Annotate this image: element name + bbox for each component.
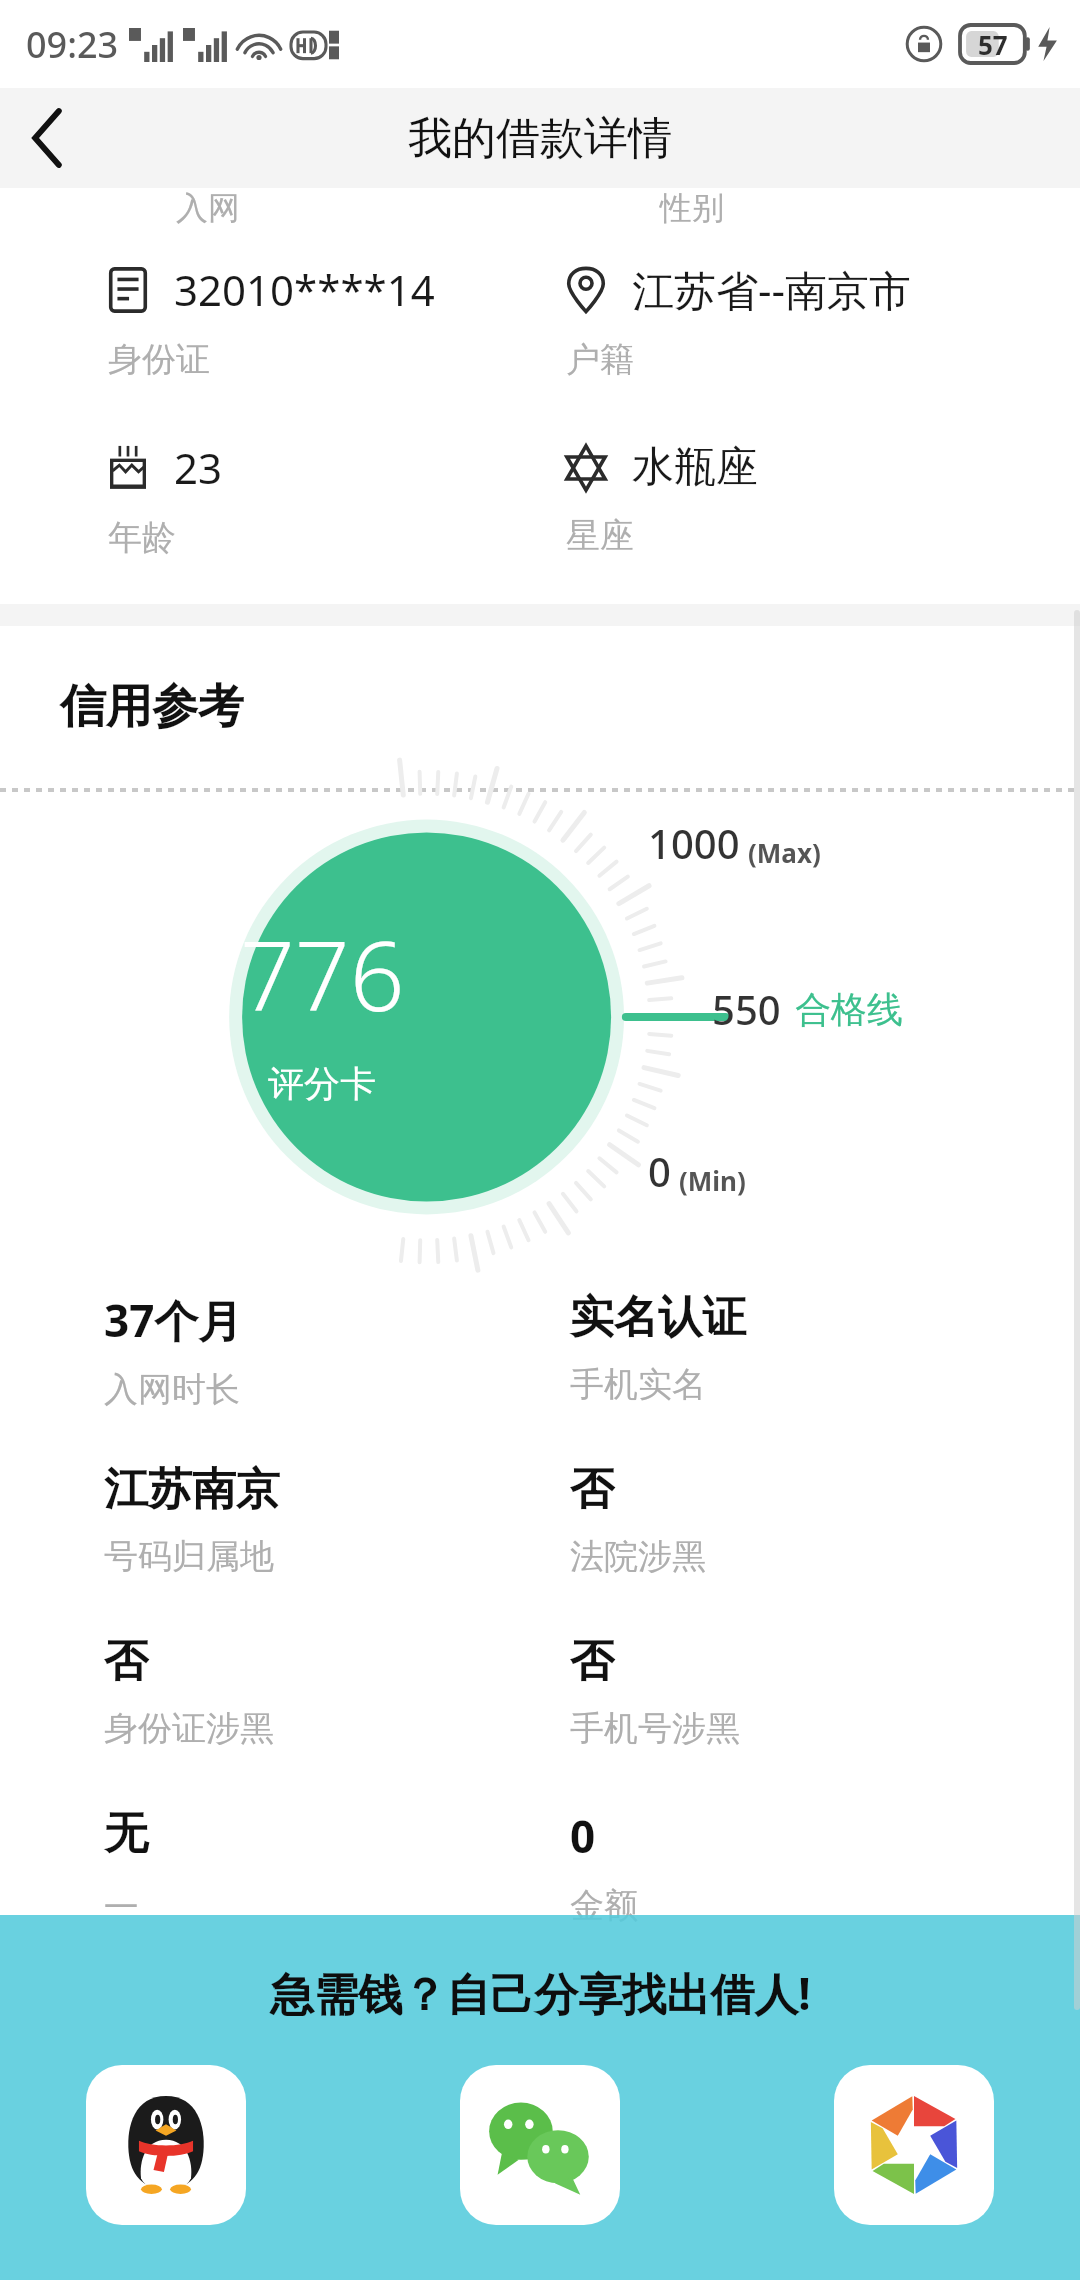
button[interactable]: Share to QZone	[834, 2065, 994, 2225]
button[interactable]: 江苏南京	[104, 1462, 540, 1634]
staticText: 手机号涉黑	[570, 1707, 740, 1750]
staticText: 急需钱？自己分享找出借人!	[270, 1963, 811, 2023]
staticText: 776	[240, 908, 405, 1039]
staticText: 57	[978, 27, 1008, 62]
staticText: (Max)	[748, 835, 821, 870]
button[interactable]: 水瓶座	[562, 410, 1080, 588]
staticText: 性别	[660, 188, 724, 228]
button[interactable]: Share to QQ	[86, 2065, 246, 2225]
staticText: 身份证	[108, 338, 210, 381]
staticText: —	[104, 1879, 138, 1925]
staticText: 无	[104, 1806, 148, 1861]
staticText: 评分卡	[268, 1061, 376, 1106]
staticText: 否	[570, 1462, 614, 1517]
staticText: 信用参考	[60, 678, 244, 736]
button[interactable]: 23	[104, 410, 540, 588]
staticText: 水瓶座	[632, 441, 758, 494]
staticText: 法院涉黑	[570, 1535, 706, 1578]
staticText: 合格线	[795, 987, 903, 1032]
staticText: 入网时长	[104, 1368, 240, 1411]
button[interactable]: 否	[104, 1634, 540, 1806]
staticText: 32010****14	[174, 261, 435, 318]
staticText: 户籍	[566, 338, 634, 381]
staticText: 金额	[570, 1884, 638, 1927]
staticText: 江苏省--南京市	[632, 261, 912, 318]
staticText: 23	[174, 439, 223, 496]
staticText: 1000	[648, 816, 740, 870]
button[interactable]: Share to WeChat	[460, 2065, 620, 2225]
staticText: 37个月	[104, 1290, 243, 1350]
staticText: 身份证涉黑	[104, 1707, 274, 1750]
button[interactable]: Back	[0, 90, 96, 186]
staticText: 09:23	[26, 20, 119, 69]
staticText: 年龄	[108, 516, 176, 559]
staticText: 否	[570, 1634, 614, 1689]
button[interactable]: 否	[570, 1634, 1080, 1806]
button[interactable]: 无	[104, 1806, 540, 1978]
staticText: 否	[104, 1634, 148, 1689]
button[interactable]: 否	[570, 1462, 1080, 1634]
staticText: 550	[712, 982, 781, 1036]
staticText: 实名认证	[570, 1290, 746, 1345]
staticText: 我的借款详情	[408, 111, 672, 166]
staticText: 江苏南京	[104, 1462, 280, 1517]
button[interactable]: 32010****14	[104, 232, 540, 410]
button[interactable]: 江苏省--南京市	[562, 232, 1080, 410]
button[interactable]: 776	[157, 842, 487, 1172]
staticText: 手机实名	[570, 1363, 706, 1406]
button[interactable]: 37个月	[104, 1290, 540, 1462]
staticText: 入网	[176, 188, 240, 228]
staticText: 0	[570, 1806, 596, 1866]
button[interactable]: 实名认证	[570, 1290, 1080, 1462]
staticText: (Min)	[679, 1163, 746, 1198]
staticText: 0	[648, 1144, 671, 1198]
button[interactable]: 0	[570, 1806, 1080, 1978]
staticText: 星座	[566, 514, 634, 557]
staticText: 号码归属地	[104, 1535, 274, 1578]
